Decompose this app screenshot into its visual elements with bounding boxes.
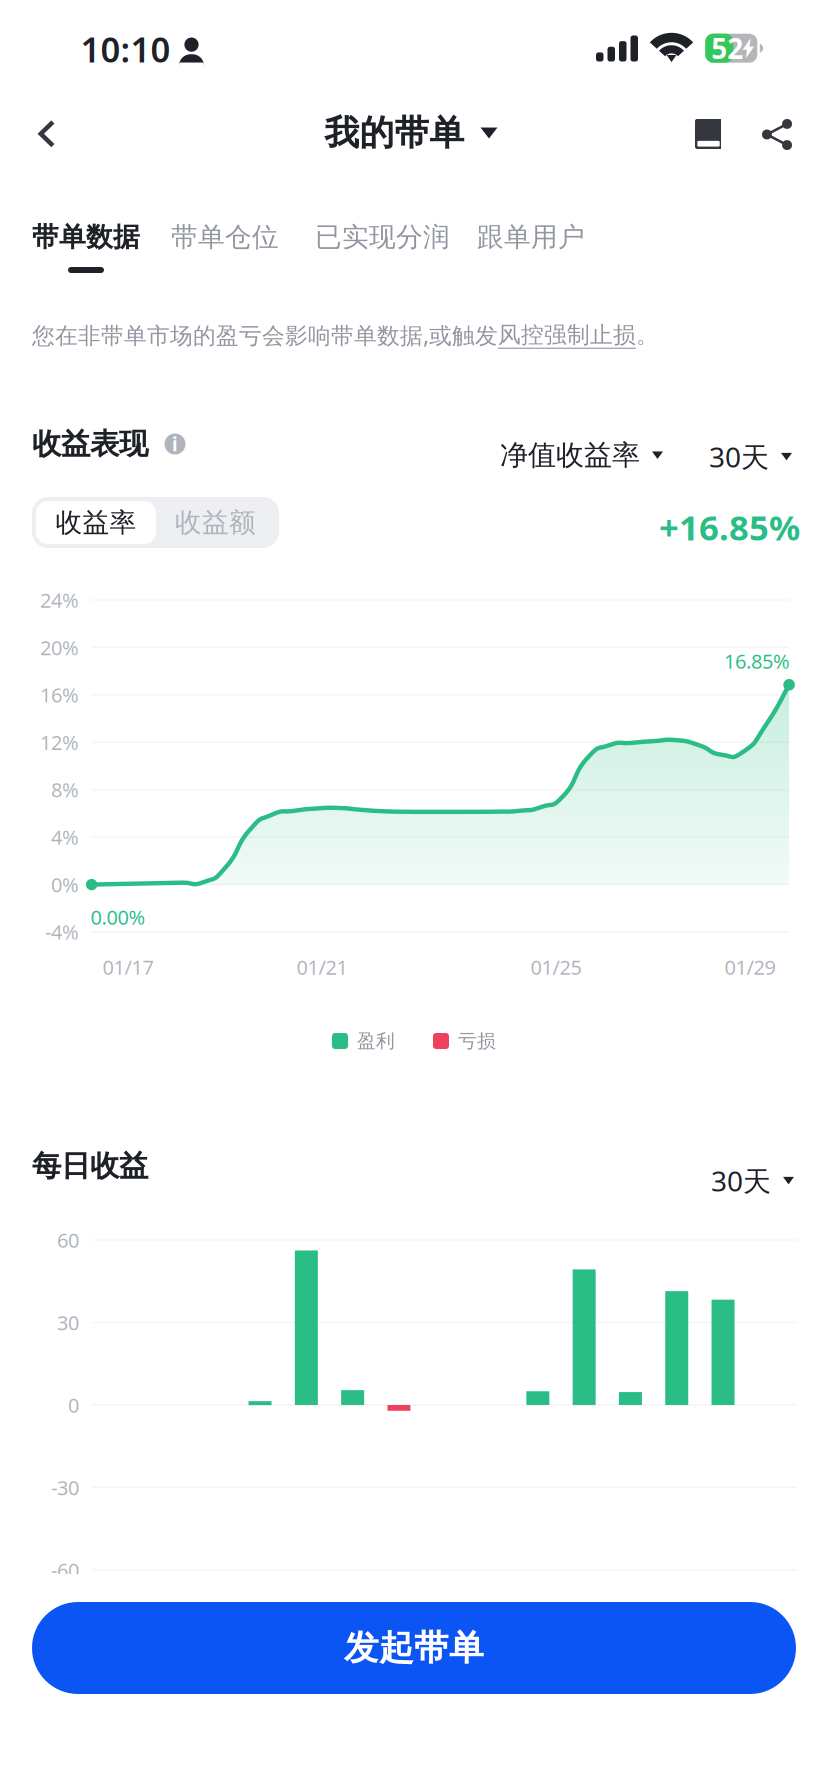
button[interactable]: 30天	[711, 1152, 794, 1209]
staticText: 已实现分润	[315, 221, 450, 253]
staticText: -4%	[45, 918, 79, 945]
button[interactable]: Back	[6, 94, 86, 174]
staticText: 01/17	[102, 954, 153, 980]
button[interactable]: 净值收益率	[500, 428, 663, 482]
staticText: 30天	[711, 1162, 771, 1199]
staticText: 52	[711, 30, 743, 67]
staticText: 60	[57, 1227, 79, 1253]
staticText: 0%	[51, 871, 79, 898]
staticText: 8%	[51, 776, 79, 803]
staticText: 您在非带单市场的盈亏会影响带单数据,或触发	[32, 320, 498, 350]
button[interactable]: 收益率	[36, 501, 156, 544]
staticText: 。	[636, 321, 659, 349]
staticText: 风控强制止损	[498, 321, 636, 349]
staticText: 01/21	[296, 954, 347, 980]
staticText: 盈利	[357, 1029, 395, 1052]
button[interactable]: 我的带单	[308, 92, 513, 174]
staticText: 带单数据	[32, 221, 140, 253]
staticText: 每日收益	[32, 1148, 148, 1184]
staticText: -60	[51, 1557, 79, 1583]
staticText: 16%	[40, 681, 79, 708]
staticText: 0	[68, 1392, 79, 1418]
button[interactable]: Share	[740, 97, 814, 171]
staticText: 亏损	[458, 1029, 496, 1052]
staticText: +16.85%	[659, 504, 800, 550]
staticText: 01/25	[530, 954, 581, 980]
staticText: i	[172, 432, 178, 456]
staticText: 带单仓位	[171, 221, 279, 253]
button[interactable]: 风控强制止损	[498, 321, 636, 349]
staticText: 收益率	[55, 506, 136, 539]
staticText: 跟单用户	[477, 221, 585, 253]
staticText: 收益额	[175, 506, 256, 539]
staticText: 30	[57, 1309, 79, 1336]
staticText: 我的带单	[324, 112, 464, 154]
staticText: 30天	[709, 438, 769, 475]
staticText: 10:10	[80, 26, 170, 72]
button[interactable]: Notes	[671, 97, 745, 171]
staticText: 24%	[40, 587, 79, 613]
staticText: 4%	[51, 824, 79, 850]
staticText: 20%	[40, 634, 79, 661]
button[interactable]: 带单数据	[32, 220, 140, 273]
button[interactable]: 收益额	[156, 501, 275, 544]
staticText: 01/29	[724, 954, 775, 980]
button[interactable]: 跟单用户	[477, 220, 585, 254]
staticText: -30	[51, 1474, 79, 1501]
button[interactable]: 发起带单	[32, 1602, 796, 1694]
staticText: 净值收益率	[500, 438, 640, 472]
button[interactable]: 已实现分润	[315, 220, 450, 254]
button[interactable]: Info	[160, 429, 190, 459]
staticText: 0.00%	[90, 904, 145, 930]
staticText: 发起带单	[344, 1627, 484, 1669]
button[interactable]: 30天	[709, 428, 792, 485]
staticText: 16.85%	[724, 648, 790, 674]
staticText: 12%	[40, 729, 79, 755]
button[interactable]: 带单仓位	[171, 220, 279, 254]
staticText: 收益表现	[32, 426, 148, 462]
